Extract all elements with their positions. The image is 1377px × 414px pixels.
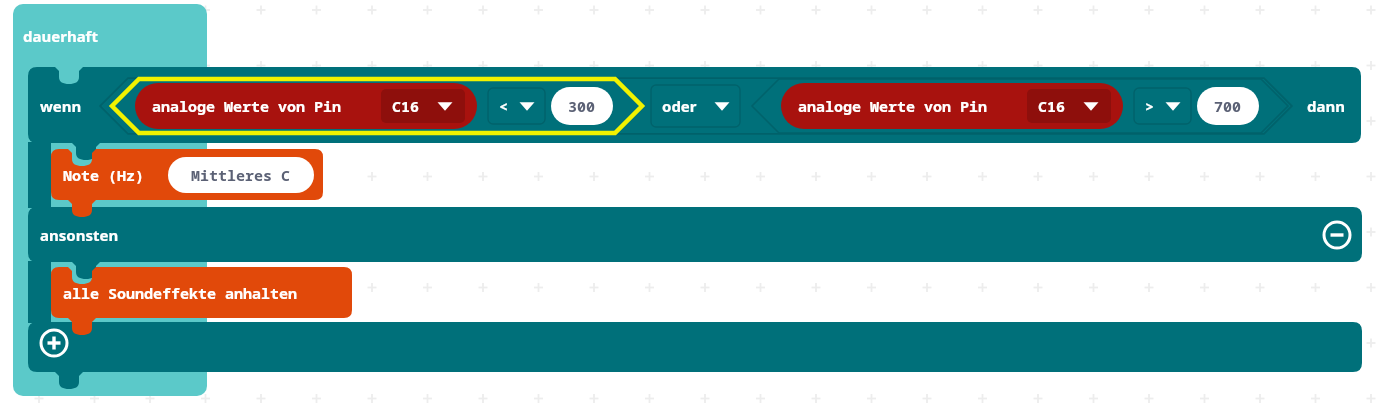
button[interactable]: MakeCode block workspace [0, 0, 1377, 414]
